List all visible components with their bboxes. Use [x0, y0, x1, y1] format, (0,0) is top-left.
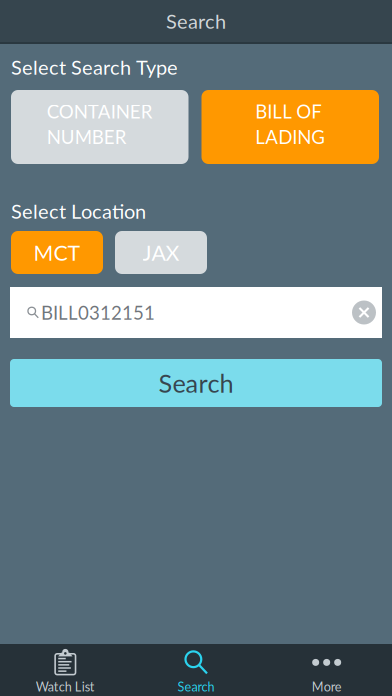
staticText: MCT — [33, 240, 80, 265]
staticText: CONTAINER NUMBER — [47, 100, 153, 148]
staticText: Watch List — [36, 679, 95, 694]
staticText: Search — [177, 679, 214, 694]
button[interactable]: More — [261, 642, 392, 696]
button[interactable]: Search — [131, 642, 261, 696]
button[interactable]: Watch List — [0, 642, 131, 696]
staticText: BILL0312151 — [41, 301, 155, 324]
button[interactable]: CONTAINER NUMBER — [11, 90, 188, 164]
button[interactable]: Search — [10, 359, 382, 407]
staticText: BILL OF LADING — [255, 100, 325, 148]
staticText: Search — [166, 9, 226, 33]
staticText: Search — [158, 368, 233, 398]
button[interactable]: BILL OF LADING — [201, 90, 379, 164]
staticText: JAX — [142, 240, 179, 265]
staticText: Select Location — [11, 199, 146, 223]
button[interactable]: MCT — [11, 231, 103, 274]
staticText: Select Search Type — [11, 55, 178, 79]
staticText: More — [312, 679, 342, 694]
button[interactable]: JAX — [115, 231, 207, 274]
